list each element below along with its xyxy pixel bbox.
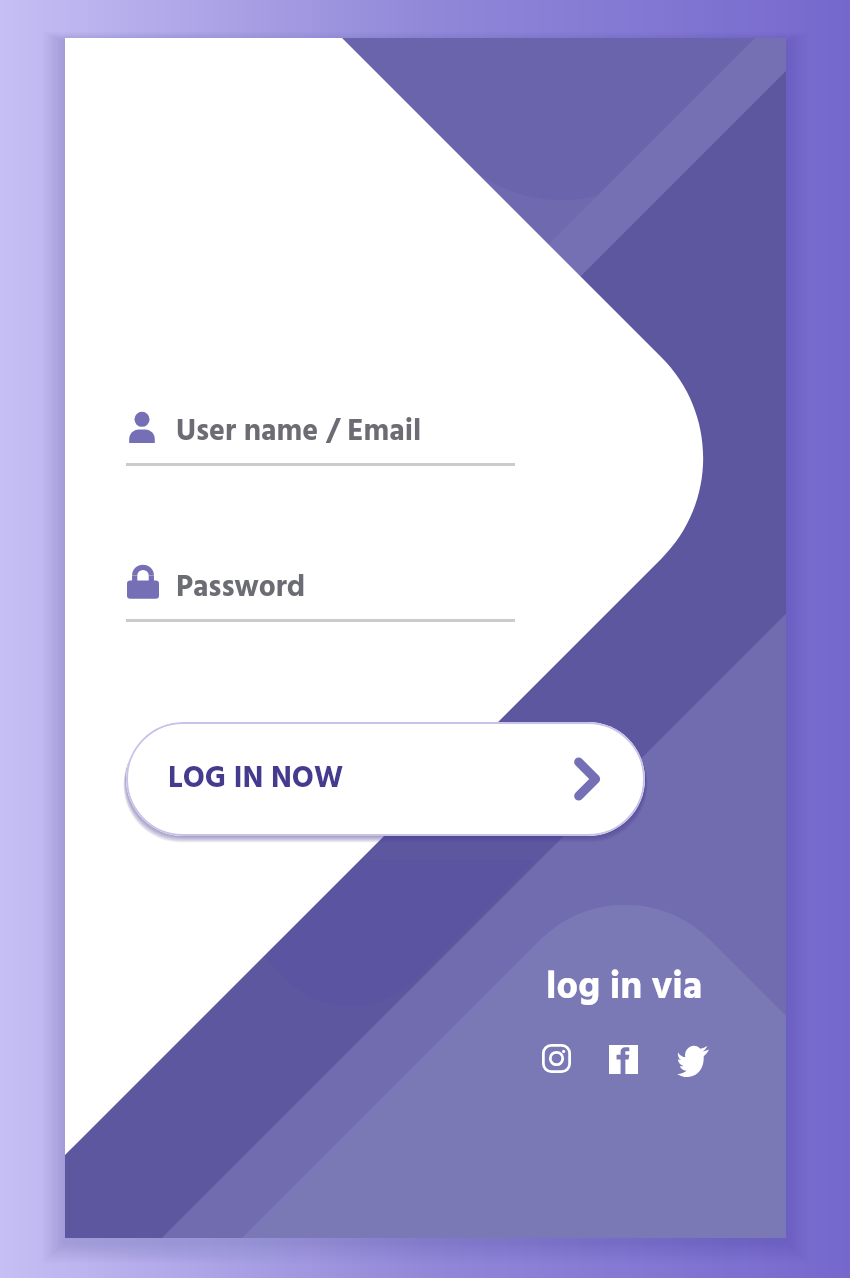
staticText: log in via (546, 958, 703, 1019)
staticText: User name / Email (176, 408, 422, 456)
button[interactable]: LOG IN NOW (126, 722, 645, 836)
staticText: Password (176, 564, 306, 612)
staticText: LOG IN NOW (168, 755, 344, 803)
